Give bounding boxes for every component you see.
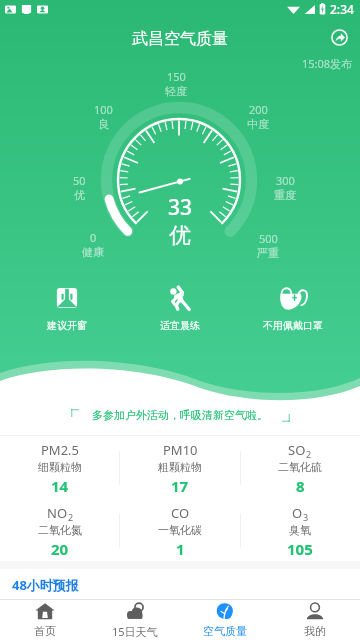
staticText: 多参加户外活动，呼吸清新空气啦。 — [0, 408, 360, 422]
staticText: 105 — [287, 539, 313, 559]
staticText: 臭氧 — [289, 523, 311, 537]
staticText: 33 — [140, 193, 220, 222]
button[interactable]: 建议开窗 — [22, 285, 112, 332]
button[interactable]: SO — [240, 437, 360, 500]
staticText: 0 — [90, 230, 97, 245]
staticText: 武昌空气质量 — [0, 29, 360, 49]
button[interactable]: 15日天气 — [90, 600, 180, 640]
staticText: 1 — [176, 539, 185, 559]
staticText: 8 — [296, 476, 305, 496]
staticText: 首页 — [34, 624, 56, 638]
staticText: 2 — [306, 448, 312, 460]
staticText: 良 — [98, 117, 109, 131]
staticText: 15日天气 — [112, 624, 158, 639]
staticText: 粗颗粒物 — [158, 460, 202, 474]
staticText: 不用佩戴口罩 — [263, 319, 323, 332]
staticText: 14 — [51, 476, 69, 496]
staticText: 重度 — [274, 188, 296, 202]
staticText: 适宜晨练 — [160, 319, 200, 332]
button[interactable]: 适宜晨练 — [135, 285, 225, 332]
button[interactable]: 不用佩戴口罩 — [248, 285, 338, 332]
staticText: PM10 — [163, 441, 198, 459]
staticText: 2 — [68, 511, 74, 523]
button[interactable]: O — [240, 500, 360, 563]
staticText: 一氧化碳 — [158, 523, 202, 537]
staticText: 严重 — [257, 246, 279, 260]
button[interactable]: CO — [120, 500, 240, 563]
button[interactable]: Share — [331, 29, 348, 46]
staticText: 500 — [259, 231, 278, 246]
staticText: 3 — [303, 511, 309, 523]
staticText: 空气质量 — [203, 624, 247, 638]
staticText: 优 — [74, 188, 85, 202]
button[interactable]: 我的 — [270, 600, 360, 640]
staticText: SO — [288, 441, 306, 459]
staticText: 150 — [167, 69, 186, 84]
staticText: 建议开窗 — [47, 319, 87, 332]
staticText: 中度 — [247, 117, 269, 131]
staticText: 17 — [171, 476, 189, 496]
staticText: 健康 — [82, 245, 104, 259]
staticText: 48小时预报 — [12, 576, 79, 594]
staticText: 100 — [94, 102, 113, 117]
staticText: 轻度 — [165, 84, 187, 98]
button[interactable]: 空气质量 — [180, 600, 270, 640]
button[interactable]: PM10 — [120, 437, 240, 500]
staticText: 50 — [73, 173, 86, 188]
staticText: CO — [171, 504, 190, 522]
staticText: 15:08发布 — [302, 56, 353, 71]
staticText: 优 — [140, 222, 220, 250]
staticText: O — [292, 504, 303, 522]
button[interactable]: PM2.5 — [0, 437, 120, 500]
button[interactable]: 48小时预报 — [0, 569, 360, 600]
staticText: 二氧化硫 — [278, 460, 322, 474]
staticText: NO — [47, 504, 68, 522]
staticText: 二氧化氮 — [38, 523, 82, 537]
button[interactable]: NO — [0, 500, 120, 563]
staticText: 细颗粒物 — [38, 460, 82, 474]
staticText: 2:34 — [330, 1, 354, 17]
staticText: 20 — [51, 539, 69, 559]
staticText: PM2.5 — [41, 441, 80, 459]
button[interactable]: 首页 — [0, 600, 90, 640]
staticText: 200 — [249, 102, 268, 117]
staticText: 我的 — [304, 624, 326, 638]
staticText: 300 — [276, 173, 295, 188]
